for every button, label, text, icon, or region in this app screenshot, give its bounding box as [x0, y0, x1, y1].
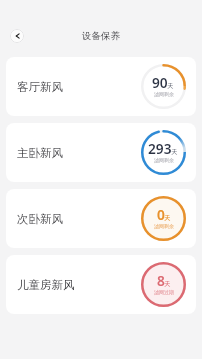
button[interactable]: Back [10, 29, 24, 43]
staticText: 滤网剩余 [154, 223, 174, 229]
staticText: 儿童房新风 [17, 278, 75, 292]
staticText: 8 [157, 271, 165, 290]
staticText: 0 [157, 205, 165, 224]
staticText: 客厅新风 [17, 80, 63, 94]
button[interactable]: 客厅新风 [6, 57, 196, 116]
staticText: 滤网过期 [154, 289, 174, 295]
staticText: 天 [171, 148, 178, 156]
staticText: 天 [167, 82, 174, 90]
staticText: 滤网剩余 [154, 91, 174, 97]
staticText: 90 [152, 73, 168, 92]
button[interactable]: 主卧新风 [6, 123, 196, 182]
staticText: 设备保养 [82, 30, 120, 42]
staticText: 次卧新风 [17, 212, 63, 226]
button[interactable]: 次卧新风 [6, 189, 196, 248]
staticText: 天 [164, 214, 171, 222]
staticText: 293 [148, 139, 172, 158]
button[interactable]: 儿童房新风 [6, 255, 196, 314]
staticText: 主卧新风 [17, 146, 63, 160]
staticText: 天 [164, 280, 171, 288]
staticText: 滤网剩余 [154, 157, 174, 163]
